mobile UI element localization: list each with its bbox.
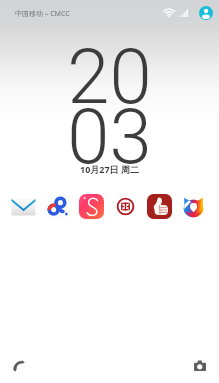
button[interactable]: Phone: [6, 353, 32, 379]
button[interactable]: Notification: [147, 194, 172, 219]
button[interactable]: ICBC notification: [113, 194, 138, 219]
staticText: 03: [67, 92, 152, 181]
staticText: 20: [67, 32, 152, 121]
button[interactable]: Mail notification: [11, 194, 36, 219]
button[interactable]: Browser notification: [181, 194, 206, 219]
staticText: 中国移动 – CMCC: [15, 9, 70, 19]
button[interactable]: Soul notification: [79, 194, 104, 219]
button[interactable]: Camera: [187, 353, 213, 379]
button[interactable]: Account: [199, 6, 213, 20]
button[interactable]: Baidu notification: [45, 194, 70, 219]
staticText: 10月27日 周二: [80, 163, 139, 175]
